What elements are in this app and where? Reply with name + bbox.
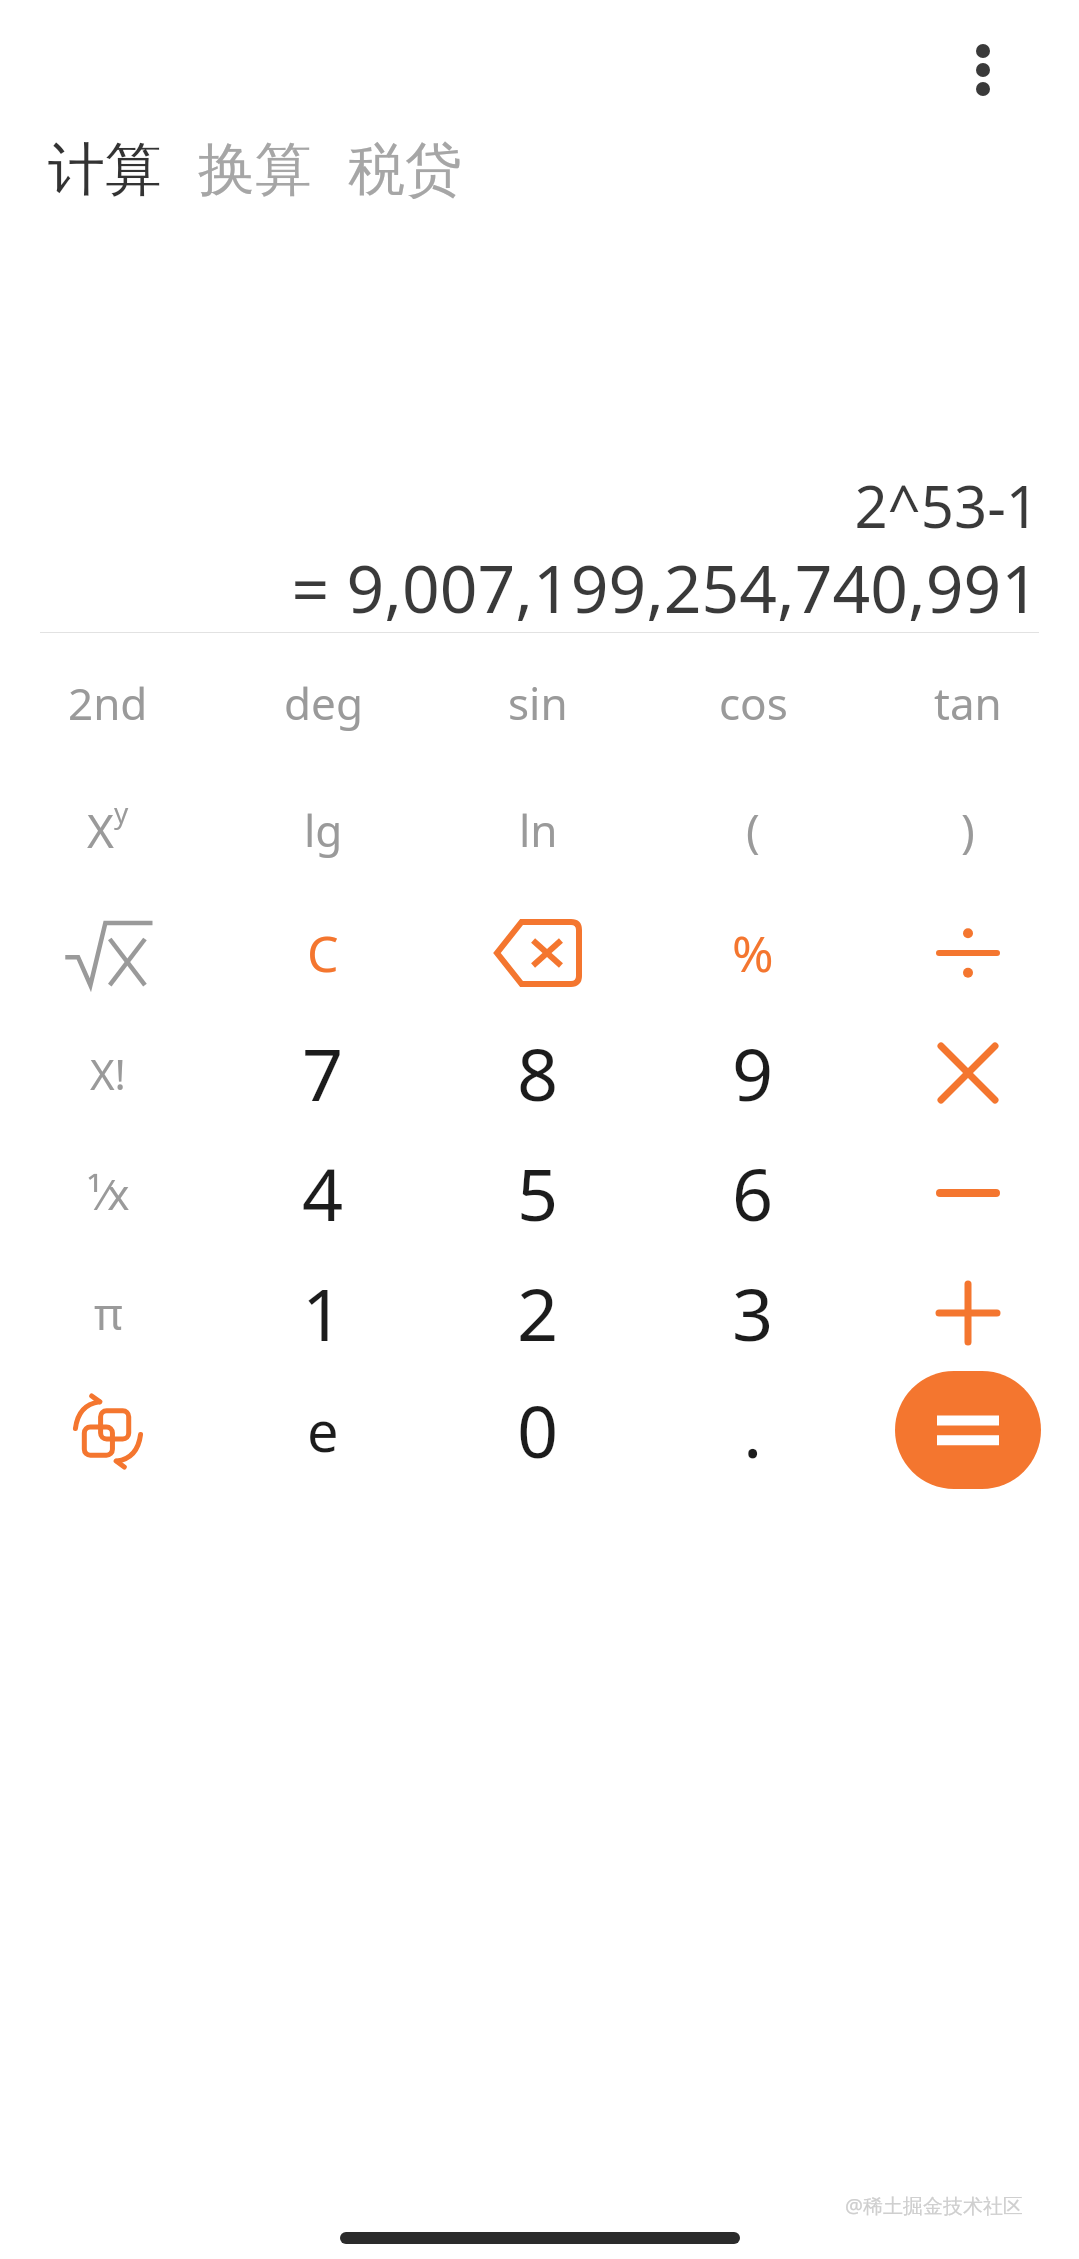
staticText: tan (934, 673, 1002, 733)
staticText: lg (304, 800, 343, 860)
button[interactable]: Backspace (438, 894, 638, 1012)
button[interactable]: e (223, 1371, 423, 1489)
staticText: 换算 (198, 134, 312, 206)
button[interactable]: ( (653, 771, 853, 889)
button[interactable]: 6 (653, 1134, 853, 1252)
staticText: 2^53-1 (0, 466, 1039, 545)
staticText: 6 (732, 1144, 774, 1242)
button[interactable]: 税贷 (346, 128, 464, 212)
staticText: ( (746, 799, 760, 862)
button[interactable]: Square root (8, 894, 208, 1012)
button[interactable]: ln (438, 771, 638, 889)
button[interactable]: tan (868, 644, 1068, 762)
button[interactable]: 9 (653, 1014, 853, 1132)
button[interactable]: More options (947, 28, 1019, 112)
button[interactable]: Multiply (868, 1014, 1068, 1132)
button[interactable]: . (653, 1371, 853, 1489)
staticText: π (94, 1283, 123, 1343)
button[interactable]: Plus (868, 1254, 1068, 1372)
staticText: e (307, 1392, 339, 1468)
staticText: sin (508, 673, 568, 733)
staticText: ln (519, 800, 558, 860)
staticText: 4 (302, 1144, 344, 1242)
staticText: 2 (517, 1264, 559, 1362)
button[interactable]: 8 (438, 1014, 638, 1132)
staticText: y (114, 793, 129, 831)
button[interactable]: 1 (223, 1254, 423, 1372)
staticText: deg (284, 673, 363, 733)
staticText: cos (719, 673, 788, 733)
button[interactable]: 2 (438, 1254, 638, 1372)
staticText: 8 (517, 1024, 559, 1122)
button[interactable]: 5 (438, 1134, 638, 1252)
staticText: . (743, 1381, 763, 1479)
staticText: % (732, 919, 774, 987)
staticText: ¹⁄x (87, 1165, 130, 1222)
button[interactable]: 换算 (196, 128, 314, 212)
button[interactable]: X (8, 771, 208, 889)
button[interactable]: deg (223, 644, 423, 762)
staticText: X! (90, 1045, 126, 1102)
staticText: 5 (517, 1144, 559, 1242)
staticText: @稀土掘金技术社区 (845, 2192, 1023, 2219)
button[interactable]: Divide (868, 894, 1068, 1012)
staticText: = 9,007,199,254,740,991 (0, 542, 1039, 632)
button[interactable]: 计算 (46, 128, 164, 212)
staticText: 0 (517, 1381, 559, 1479)
button[interactable]: ) (868, 771, 1068, 889)
button[interactable]: ¹⁄x (8, 1134, 208, 1252)
staticText: 计算 (48, 134, 162, 206)
staticText: X (87, 799, 114, 862)
button[interactable]: 2nd (8, 644, 208, 762)
button[interactable]: % (653, 894, 853, 1012)
staticText: 3 (732, 1264, 774, 1362)
button[interactable]: C (223, 894, 423, 1012)
staticText: 9 (732, 1024, 774, 1122)
staticText: 2nd (68, 673, 148, 733)
button[interactable]: 4 (223, 1134, 423, 1252)
button[interactable]: lg (223, 771, 423, 889)
button[interactable]: sin (438, 644, 638, 762)
button[interactable]: X! (8, 1014, 208, 1132)
button[interactable]: 7 (223, 1014, 423, 1132)
button[interactable]: 0 (438, 1371, 638, 1489)
button[interactable]: 3 (653, 1254, 853, 1372)
staticText: 7 (302, 1024, 344, 1122)
staticText: 1 (302, 1264, 344, 1362)
button[interactable]: Unit convert (8, 1371, 208, 1489)
button[interactable]: π (8, 1254, 208, 1372)
button[interactable]: cos (653, 644, 853, 762)
button[interactable]: Equals (895, 1371, 1041, 1489)
button[interactable]: Minus (868, 1134, 1068, 1252)
staticText: ) (961, 799, 975, 862)
staticText: 税贷 (348, 134, 462, 206)
staticText: C (307, 919, 339, 987)
